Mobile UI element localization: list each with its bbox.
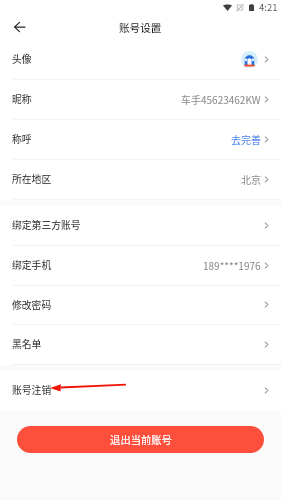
button[interactable]: 所在地区: [0, 160, 281, 200]
button[interactable]: 昵称: [0, 80, 281, 120]
staticText: 4:21: [259, 0, 278, 14]
staticText: 退出当前账号: [110, 432, 172, 447]
staticText: 所在地区: [12, 172, 52, 186]
staticText: 北京: [241, 172, 261, 186]
staticText: 车手45623462KW: [181, 92, 261, 106]
staticText: 称呼: [12, 132, 32, 146]
staticText: 绑定手机: [12, 258, 52, 272]
staticText: 昵称: [12, 92, 32, 106]
button[interactable]: 修改密码: [0, 286, 281, 325]
button[interactable]: Back: [7, 15, 31, 39]
button[interactable]: 账号注销: [0, 371, 281, 411]
button[interactable]: 绑定第三方账号: [0, 206, 281, 246]
button[interactable]: 黑名单: [0, 325, 281, 365]
staticText: 189****1976: [203, 258, 261, 272]
button[interactable]: 退出当前账号: [17, 426, 264, 453]
button[interactable]: 称呼: [0, 120, 281, 160]
staticText: 去完善: [231, 132, 261, 146]
staticText: 头像: [12, 52, 32, 66]
staticText: 修改密码: [12, 298, 52, 312]
button[interactable]: 头像: [0, 40, 281, 80]
button[interactable]: 绑定手机: [0, 246, 281, 286]
staticText: 账号注销: [12, 383, 52, 397]
staticText: 黑名单: [12, 337, 42, 351]
staticText: 账号设置: [119, 20, 162, 35]
staticText: 绑定第三方账号: [12, 218, 81, 232]
